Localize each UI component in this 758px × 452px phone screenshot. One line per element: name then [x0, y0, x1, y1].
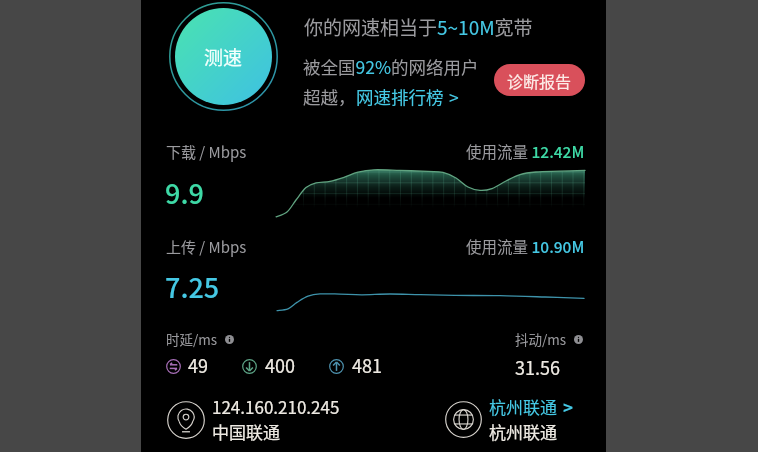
staticText: 9.9: [165, 173, 204, 212]
button[interactable]: 杭州联通: [445, 396, 585, 444]
staticText: 上传 / Mbps: [166, 236, 247, 258]
staticText: 杭州联通: [489, 394, 557, 419]
button[interactable]: Ping: [162, 354, 218, 380]
button[interactable]: 诊断报告: [494, 64, 585, 96]
staticText: 49: [188, 352, 208, 378]
staticText: 超越，: [303, 84, 356, 109]
staticText: 抖动/ms: [515, 329, 567, 349]
staticText: 你的网速相当于5~10M宽带: [304, 13, 533, 41]
staticText: 124.160.210.245: [212, 394, 340, 419]
staticText: >: [449, 84, 459, 109]
staticText: >: [563, 394, 574, 419]
staticText: 诊断报告: [507, 69, 572, 92]
staticText: 400: [265, 352, 295, 378]
staticText: 中国联通: [212, 419, 280, 444]
staticText: 31.56: [515, 354, 560, 380]
staticText: 时延/ms: [166, 329, 218, 349]
button[interactable]: Upload latency: [325, 354, 382, 380]
staticText: 测速: [204, 43, 243, 71]
staticText: 杭州联通: [489, 419, 557, 444]
staticText: 使用流量 10.90M: [466, 235, 585, 257]
button[interactable]: 网速排行榜: [356, 84, 459, 109]
staticText: 使用流量 12.42M: [466, 140, 585, 162]
staticText: 下载 / Mbps: [166, 141, 247, 163]
staticText: 被全国92%的网络用户: [303, 54, 479, 79]
staticText: 网速排行榜: [356, 84, 444, 109]
button[interactable]: 测速 Start speed test: [169, 2, 278, 111]
button[interactable]: Download latency: [238, 354, 295, 380]
staticText: 481: [352, 352, 382, 378]
staticText: 7.25: [165, 267, 220, 306]
button[interactable]: 124.160.210.245: [166, 396, 346, 444]
